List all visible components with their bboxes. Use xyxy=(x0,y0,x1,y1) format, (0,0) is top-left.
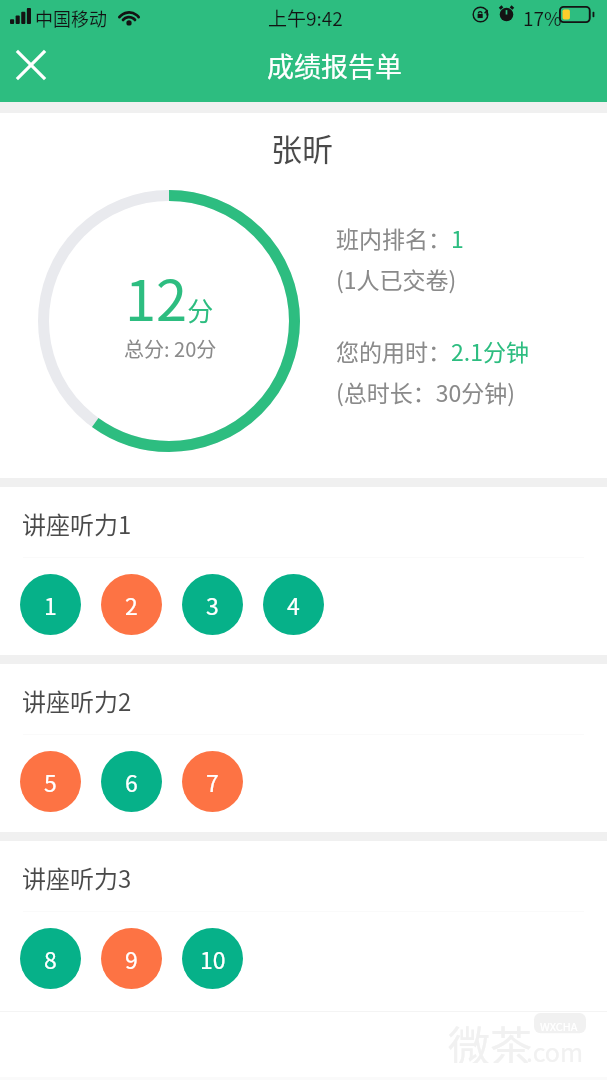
button[interactable]: 7 xyxy=(182,751,243,812)
button[interactable]: 8 xyxy=(20,928,81,989)
button[interactable]: 4 xyxy=(263,574,324,635)
staticText: (1人已交卷) xyxy=(336,262,457,295)
staticText: 2.1分钟 xyxy=(451,334,529,367)
staticText: 上午9:42 xyxy=(268,4,343,32)
button[interactable]: 3 xyxy=(182,574,243,635)
staticText: 17% xyxy=(523,4,562,32)
button[interactable]: Close xyxy=(7,41,55,89)
button[interactable]: 9 xyxy=(101,928,162,989)
staticText: 9 xyxy=(125,942,138,975)
staticText: 1 xyxy=(451,221,464,254)
staticText: 10 xyxy=(200,942,226,975)
staticText: 张昕 xyxy=(271,125,333,170)
staticText: 12分 xyxy=(125,256,214,337)
button[interactable]: 1 xyxy=(20,574,81,635)
staticText: 微茶 xyxy=(448,1013,533,1063)
staticText: 讲座听力3 xyxy=(22,860,132,895)
staticText: 3 xyxy=(206,588,219,621)
staticText: 总分: 20分 xyxy=(124,334,217,363)
staticText: .com xyxy=(526,1033,584,1069)
staticText: 中国移动 xyxy=(35,5,107,31)
button[interactable]: 5 xyxy=(20,751,81,812)
button[interactable]: 2 xyxy=(101,574,162,635)
staticText: 1 xyxy=(44,588,57,621)
staticText: WXCHA xyxy=(540,1018,578,1034)
staticText: 7 xyxy=(206,765,219,798)
staticText: 班内排名： xyxy=(336,221,451,254)
button[interactable]: 10 xyxy=(182,928,243,989)
staticText: 8 xyxy=(44,942,57,975)
staticText: 2 xyxy=(125,588,138,621)
staticText: 您的用时： xyxy=(336,334,451,367)
staticText: 讲座听力2 xyxy=(22,683,132,718)
staticText: (总时长：30分钟) xyxy=(336,375,516,408)
staticText: 讲座听力1 xyxy=(22,506,132,541)
staticText: 4 xyxy=(287,588,300,621)
staticText: 成绩报告单 xyxy=(267,46,402,85)
staticText: 5 xyxy=(44,765,57,798)
staticText: 6 xyxy=(125,765,138,798)
button[interactable]: 6 xyxy=(101,751,162,812)
